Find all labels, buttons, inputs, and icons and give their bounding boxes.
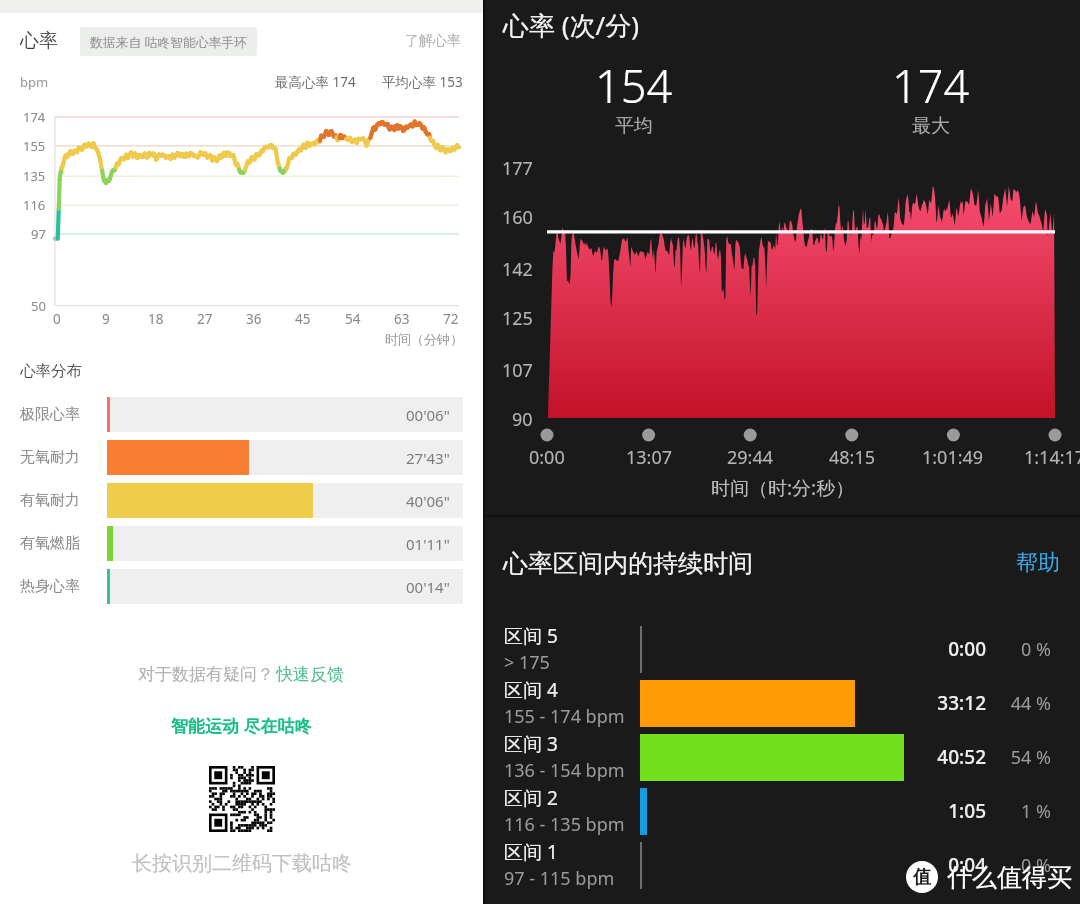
staticText: 值 [913,866,931,889]
button[interactable]: 极限心率 [0,393,483,436]
staticText: 1 % [1004,799,1051,824]
staticText: 对于数据有疑问？ [138,664,274,685]
staticText: 快速反馈 [276,664,344,685]
staticText: 154 [595,55,673,103]
staticText: 0:00 [529,445,565,467]
staticText: > 175 [504,650,550,675]
staticText: 00'06" [406,405,450,425]
staticText: 长按识别二维码下载咕咚 [132,851,352,876]
button[interactable]: 区间 1 [485,838,1080,892]
button[interactable]: 数据来自 咕咚智能心率手环 [80,27,257,56]
staticText: 177 [502,156,533,178]
staticText: 40:52 [904,744,986,770]
staticText: 心率 (次/分) [503,7,640,43]
staticText: 116 [23,196,46,214]
staticText: bpm [20,73,49,91]
staticText: 时间（时:分:秒） [711,475,855,499]
staticText: 心率分布 [20,361,82,381]
staticText: 0 [53,310,61,328]
staticText: 无氧耐力 [20,448,80,467]
staticText: 00'14" [406,577,450,597]
staticText: 33:12 [904,690,986,716]
staticText: 54 [345,310,361,328]
staticText: 1:01:49 [922,445,984,467]
staticText: 0 % [1004,637,1051,662]
staticText: 90 [512,407,533,429]
staticText: 平均心率 153 [382,73,463,91]
staticText: 142 [502,257,533,279]
staticText: 什么值得买 [947,862,1072,893]
staticText: 有氧耐力 [20,491,80,510]
staticText: 27'43" [406,448,450,468]
staticText: 155 - 174 bpm [504,704,625,729]
staticText: 了解心率 [405,32,461,50]
staticText: 54 % [1004,745,1051,770]
button[interactable]: 有氧燃脂 [0,522,483,565]
staticText: 01'11" [406,534,450,554]
staticText: 36 [246,310,262,328]
staticText: 44 % [1004,691,1051,716]
staticText: 区间 3 [504,731,558,757]
button[interactable]: 帮助 [1014,543,1062,583]
staticText: 13:07 [626,445,673,467]
button[interactable]: 无氧耐力 [0,436,483,479]
staticText: 区间 1 [504,839,558,865]
staticText: 155 [23,137,46,155]
staticText: 160 [502,205,533,227]
button[interactable]: 区间 5 [485,622,1080,676]
staticText: 0:00 [904,636,986,662]
staticText: 174 [892,55,970,103]
staticText: 0:04 [904,852,986,878]
button[interactable]: 扫描二维码下载咕咚 [209,766,275,832]
staticText: 135 [23,167,46,185]
staticText: 极限心率 [20,405,80,424]
staticText: 50 [31,297,46,315]
staticText: 0 % [1004,853,1051,878]
staticText: 区间 2 [504,785,558,811]
staticText: 97 - 115 bpm [504,866,615,891]
staticText: 1:14:17 [1024,445,1080,467]
staticText: 9 [102,310,110,328]
button[interactable]: 快速反馈 [274,659,346,690]
staticText: 热身心率 [20,577,80,596]
staticText: 1:05 [904,798,986,824]
staticText: 心率区间内的持续时间 [503,548,753,579]
button[interactable]: 有氧耐力 [0,479,483,522]
staticText: 数据来自 咕咚智能心率手环 [90,33,247,50]
staticText: 48:15 [829,445,876,467]
staticText: 97 [31,225,46,243]
staticText: 107 [502,358,533,380]
staticText: 心率 [20,29,58,53]
staticText: 区间 4 [504,677,558,703]
staticText: 40'06" [406,491,450,511]
staticText: 最高心率 174 [275,73,356,91]
staticText: 区间 5 [504,623,558,649]
button[interactable]: 区间 2 [485,784,1080,838]
button[interactable]: 了解心率 [403,26,463,56]
button[interactable]: 区间 4 [485,676,1080,730]
staticText: 27 [197,310,213,328]
staticText: 72 [443,310,459,328]
staticText: 最大 [912,114,950,138]
button[interactable]: 区间 3 [485,730,1080,784]
staticText: 帮助 [1016,549,1060,577]
staticText: 18 [148,310,164,328]
staticText: 45 [295,310,311,328]
staticText: 174 [23,108,46,126]
staticText: 时间（分钟） [385,331,463,347]
staticText: 125 [502,306,533,328]
staticText: 29:44 [727,445,774,467]
staticText: 116 - 135 bpm [504,812,625,837]
staticText: 63 [394,310,410,328]
staticText: 智能运动 尽在咕咚 [171,714,312,737]
staticText: 平均 [615,114,653,138]
button[interactable]: 热身心率 [0,565,483,608]
staticText: 136 - 154 bpm [504,758,625,783]
staticText: 有氧燃脂 [20,534,80,553]
